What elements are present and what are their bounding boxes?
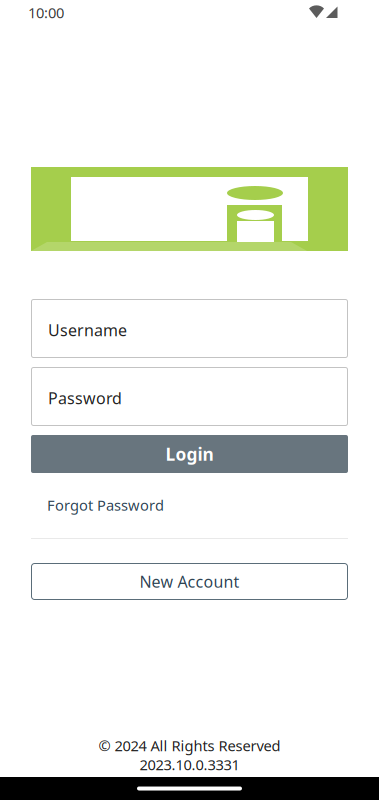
- button[interactable]: Forgot Password: [31, 497, 348, 513]
- staticText: 2023.10.0.3331: [139, 755, 239, 774]
- staticText: Username: [48, 319, 127, 341]
- staticText: New Account: [139, 571, 239, 592]
- staticText: Forgot Password: [47, 495, 164, 515]
- button[interactable]: Login: [31, 435, 348, 473]
- staticText: © 2024 All Rights Reserved: [98, 736, 280, 755]
- staticText: Login: [165, 442, 213, 465]
- button[interactable]: New Account: [31, 563, 348, 600]
- staticText: 10:00: [28, 3, 64, 22]
- staticText: Password: [48, 387, 122, 409]
